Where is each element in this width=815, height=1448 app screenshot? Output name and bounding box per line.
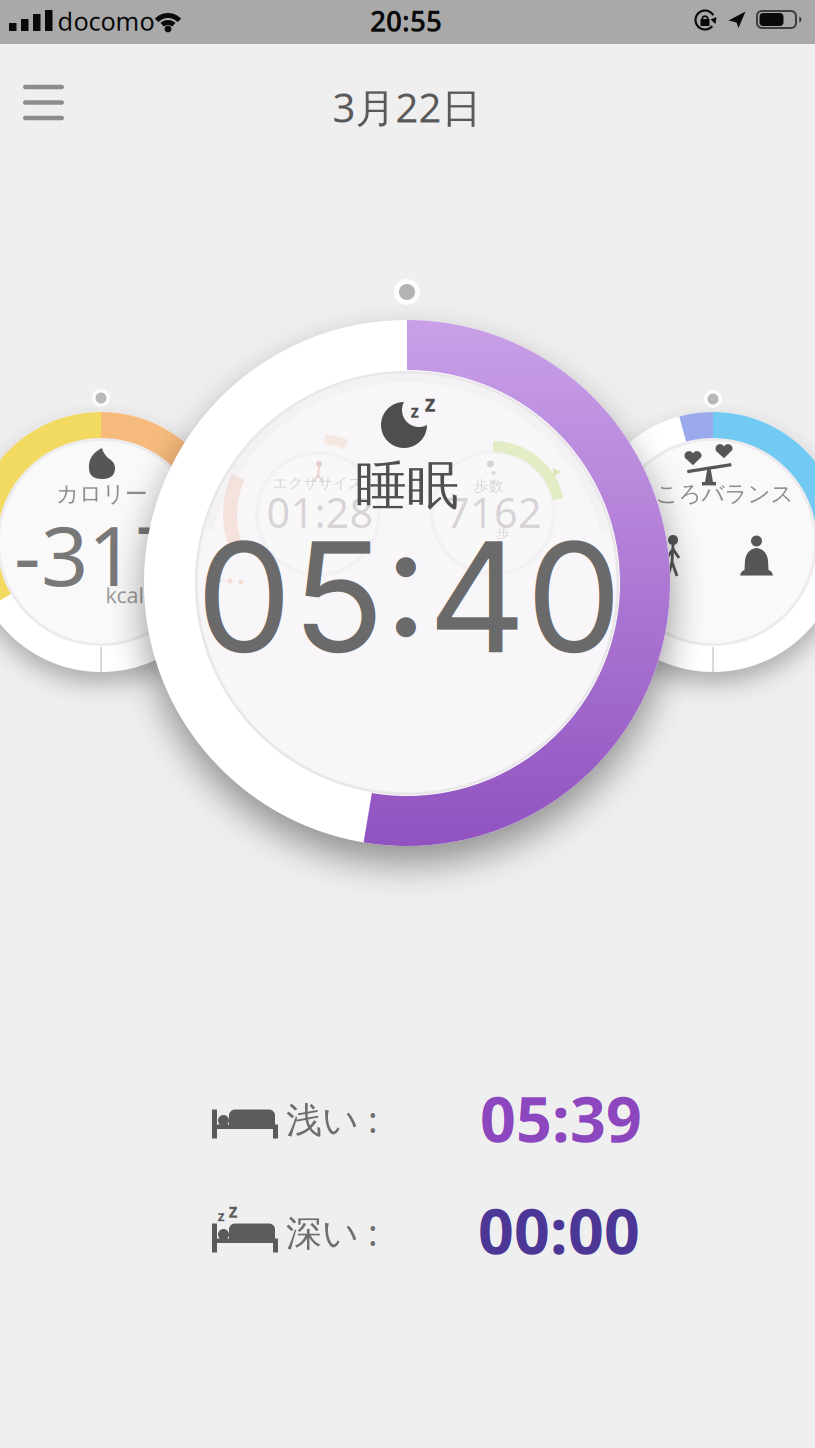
- button[interactable]: メニュー: [15, 77, 71, 127]
- staticText: 7162: [446, 485, 542, 539]
- staticText: カロリー: [56, 480, 148, 508]
- staticText: 05:40: [196, 505, 622, 689]
- staticText: docomo: [57, 4, 154, 38]
- staticText: 00:00: [478, 1188, 640, 1272]
- staticText: 05:39: [480, 1076, 642, 1160]
- staticText: こころバランス: [632, 480, 793, 508]
- button[interactable]: カロリー: [0, 412, 231, 672]
- staticText: 睡眠: [355, 454, 459, 518]
- staticText: -317: [14, 499, 182, 609]
- staticText: 深い :: [286, 1208, 378, 1256]
- staticText: 01:28: [266, 485, 373, 539]
- staticText: z: [217, 1206, 224, 1225]
- button[interactable]: こころバランス: [583, 412, 815, 672]
- staticText: 歩: [496, 525, 509, 541]
- staticText: 浅い :: [286, 1095, 378, 1143]
- staticText: z: [424, 388, 435, 418]
- staticText: z: [228, 1198, 237, 1223]
- staticText: z: [410, 399, 419, 422]
- staticText: 3月22日: [332, 80, 481, 133]
- button[interactable]: 睡眠: [144, 320, 670, 846]
- staticText: kcal: [105, 581, 144, 609]
- staticText: 20:55: [370, 2, 442, 40]
- staticText: 歩数: [474, 477, 504, 495]
- staticText: エクササイズ: [273, 474, 363, 492]
